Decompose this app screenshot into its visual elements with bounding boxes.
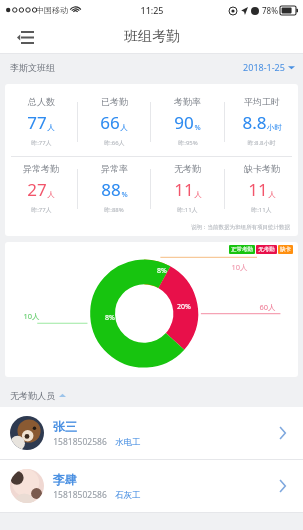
staticText: 已考勤 xyxy=(101,96,128,107)
staticText: 11 xyxy=(174,178,194,201)
button[interactable]: 异常率 xyxy=(78,157,150,214)
staticText: 20% xyxy=(177,302,191,312)
button[interactable]: 缺卡考勤 xyxy=(225,157,298,214)
button[interactable]: 异常考勤 xyxy=(5,157,77,214)
button[interactable]: 2018-1-25 xyxy=(243,61,295,73)
staticText: 10人 xyxy=(23,311,40,321)
staticText: % xyxy=(121,189,128,199)
staticText: 小时 xyxy=(267,123,282,132)
button[interactable]: 无考勤 xyxy=(151,157,224,214)
staticText: 缺卡 xyxy=(280,246,291,253)
staticText: 15818502586 xyxy=(53,436,107,448)
staticText: 张三 xyxy=(53,419,77,434)
staticText: 昨:88% xyxy=(104,206,124,214)
staticText: 正常考勤 xyxy=(231,246,253,253)
staticText: 昨:11人 xyxy=(251,206,272,214)
staticText: 李肆 xyxy=(53,472,77,487)
staticText: 无考勤人员 xyxy=(10,390,55,401)
staticText: 人 xyxy=(47,123,55,132)
staticText: 10人 xyxy=(231,262,248,272)
staticText: 77 xyxy=(27,111,47,134)
staticText: 人 xyxy=(47,190,55,199)
staticText: 人 xyxy=(268,190,276,199)
button[interactable]: Details xyxy=(271,475,293,497)
button[interactable]: 平均工时 xyxy=(225,90,298,147)
staticText: 昨:8.8小时 xyxy=(247,139,276,147)
staticText: 缺卡考勤 xyxy=(244,163,280,174)
staticText: 8% xyxy=(157,266,167,276)
button[interactable]: Details xyxy=(271,422,293,444)
staticText: 无考勤 xyxy=(174,163,201,174)
staticText: 人 xyxy=(194,190,202,199)
button[interactable]: 李肆 xyxy=(0,460,303,512)
button[interactable]: 正常考勤 xyxy=(231,246,253,253)
button[interactable]: 张三 xyxy=(0,407,303,459)
staticText: 8% xyxy=(105,313,115,323)
staticText: 15818502586 xyxy=(53,489,107,501)
staticText: % xyxy=(194,122,201,132)
button[interactable]: 考勤率 xyxy=(151,90,224,147)
staticText: 石灰工 xyxy=(115,490,141,501)
staticText: 总人数 xyxy=(28,96,55,107)
staticText: 人 xyxy=(120,123,128,132)
staticText: 说明：当前数据为班组所有项目统计数据 xyxy=(191,224,290,231)
staticText: 2018-1-25 xyxy=(243,61,285,73)
staticText: 水电工 xyxy=(115,437,141,448)
staticText: 11 xyxy=(248,178,268,201)
button[interactable]: 已考勤 xyxy=(78,90,150,147)
staticText: 11:25 xyxy=(140,4,164,16)
staticText: 27 xyxy=(27,178,47,201)
staticText: 平均工时 xyxy=(244,96,280,107)
staticText: 昨:95% xyxy=(178,139,198,147)
staticText: 异常考勤 xyxy=(23,163,59,174)
staticText: 中国移动 xyxy=(36,5,68,15)
button[interactable]: Menu xyxy=(10,22,40,52)
staticText: 昨:66人 xyxy=(104,139,125,147)
staticText: 昨:77人 xyxy=(31,206,52,214)
button[interactable]: 无考勤 xyxy=(258,246,275,253)
staticText: 无考勤 xyxy=(258,246,275,253)
button[interactable]: 无考勤人员 xyxy=(10,383,303,407)
button[interactable]: 总人数 xyxy=(5,90,77,147)
button[interactable]: 缺卡 xyxy=(280,246,291,253)
staticText: 昨:11人 xyxy=(177,206,198,214)
staticText: 66 xyxy=(100,111,120,134)
staticText: 昨:77人 xyxy=(31,139,52,147)
staticText: 78% xyxy=(262,5,278,16)
staticText: 60人 xyxy=(259,302,276,312)
staticText: 8.8 xyxy=(242,111,267,134)
staticText: 李斯文班组 xyxy=(10,62,55,73)
staticText: 考勤率 xyxy=(174,96,201,107)
staticText: 异常率 xyxy=(101,163,128,174)
staticText: 班组考勤 xyxy=(124,28,180,46)
staticText: 88 xyxy=(101,178,121,201)
staticText: 90 xyxy=(174,111,194,134)
